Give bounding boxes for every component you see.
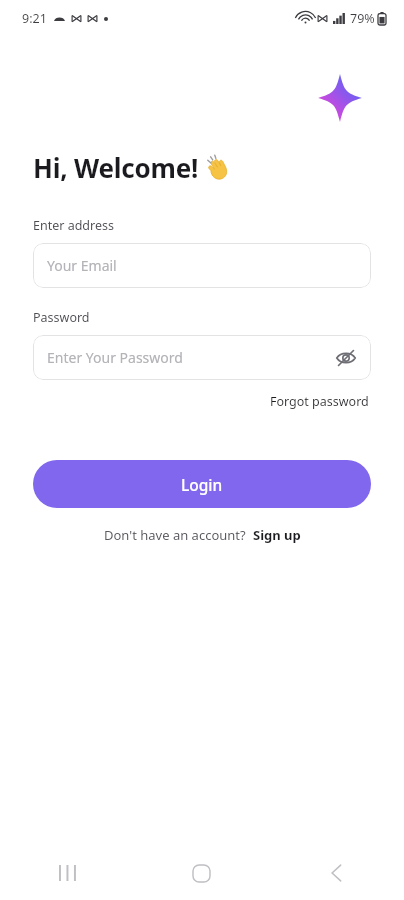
button[interactable]: Recent apps bbox=[0, 846, 134, 900]
button[interactable]: Forgot password bbox=[268, 391, 371, 412]
staticText: Hi, Welcome! bbox=[33, 150, 199, 185]
staticText: Forgot password bbox=[270, 393, 369, 410]
button[interactable]: AI sparkle bbox=[314, 72, 366, 124]
button[interactable]: Back bbox=[269, 846, 404, 900]
button[interactable]: Enter Your Password bbox=[33, 335, 371, 380]
staticText: Don't have an account? bbox=[104, 526, 246, 544]
button[interactable]: Show password bbox=[333, 345, 359, 371]
button[interactable]: Home bbox=[134, 846, 269, 900]
button[interactable]: Login bbox=[33, 460, 371, 508]
staticText: Password bbox=[33, 309, 90, 326]
staticText: Enter Your Password bbox=[47, 348, 183, 367]
staticText: Login bbox=[181, 474, 223, 495]
button[interactable]: Your Email bbox=[33, 243, 371, 288]
staticText: 79% bbox=[350, 10, 375, 27]
button[interactable]: Sign up bbox=[253, 526, 301, 544]
staticText: Enter address bbox=[33, 217, 114, 234]
staticText: Your Email bbox=[47, 256, 117, 275]
staticText: Sign up bbox=[253, 526, 301, 544]
staticText: 9:21 bbox=[22, 10, 47, 27]
